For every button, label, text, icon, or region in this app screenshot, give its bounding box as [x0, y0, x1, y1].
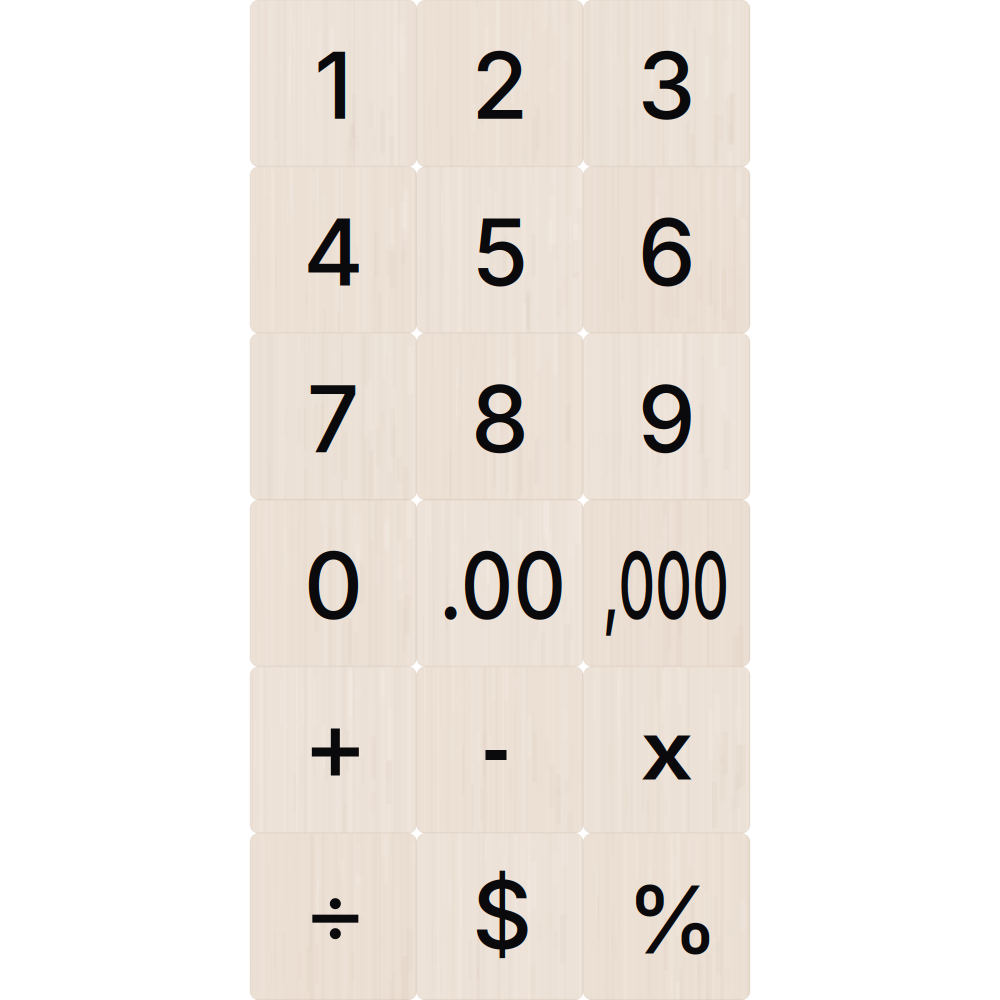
staticText: .00	[430, 530, 573, 641]
button[interactable]: 1	[250, 0, 417, 167]
button[interactable]: 5	[417, 167, 583, 333]
button[interactable]: 4	[250, 167, 417, 333]
staticText: 5	[471, 196, 528, 308]
button[interactable]: plus	[250, 667, 417, 833]
button[interactable]: 3	[583, 0, 750, 167]
button[interactable]: 7	[250, 333, 417, 500]
button[interactable]: 8	[417, 333, 583, 500]
staticText: 7	[307, 363, 360, 474]
button[interactable]: 0	[250, 500, 417, 667]
button[interactable]: comma zero zero zero	[583, 500, 750, 667]
button[interactable]: percent	[583, 833, 750, 1000]
staticText: 1	[314, 30, 352, 141]
button[interactable]: divide	[250, 833, 417, 1000]
button[interactable]: 6	[583, 167, 750, 333]
button[interactable]: minus	[417, 667, 583, 833]
button[interactable]: dollar	[417, 833, 583, 1000]
staticText: 9	[638, 363, 696, 474]
staticText: 4	[303, 196, 363, 308]
staticText: 2	[471, 30, 528, 141]
button[interactable]: 9	[583, 333, 750, 500]
button[interactable]: multiply	[583, 667, 750, 833]
staticText: 0	[304, 530, 363, 641]
staticText: x	[644, 701, 690, 799]
staticText: 6	[638, 196, 696, 308]
staticText: $	[472, 858, 532, 971]
staticText: ,000	[565, 530, 767, 641]
staticText: 3	[638, 30, 696, 141]
button[interactable]: point zero zero	[417, 500, 583, 667]
staticText: 8	[471, 363, 529, 474]
button[interactable]: 2	[417, 0, 583, 167]
staticText: %	[626, 863, 719, 976]
